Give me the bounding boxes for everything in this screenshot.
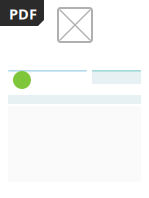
button[interactable]: PDF document <box>0 0 44 26</box>
staticText: PDF <box>9 4 37 23</box>
